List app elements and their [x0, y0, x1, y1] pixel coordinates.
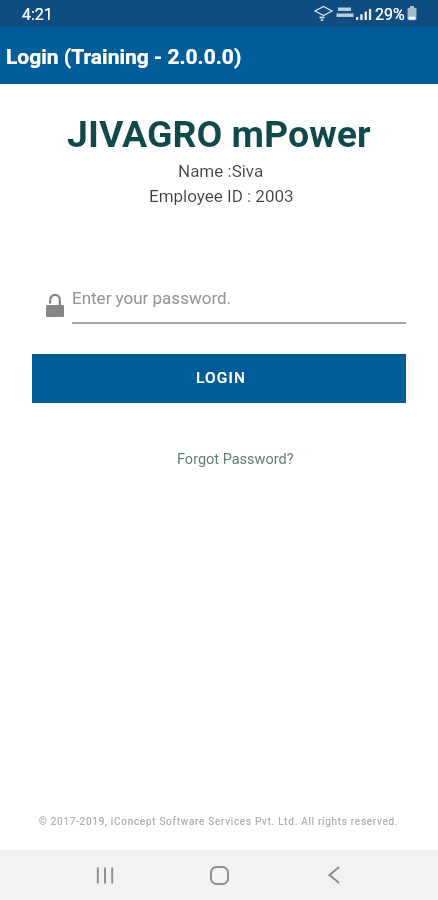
staticText: © 2017-2019, iConcept Software Services …: [39, 816, 399, 828]
staticText: Name :Siva: [178, 161, 264, 181]
button[interactable]: Forgot Password?: [167, 444, 304, 475]
staticText: LOGIN: [196, 369, 247, 387]
button[interactable]: LOGIN: [32, 354, 406, 403]
staticText: 4:21: [22, 5, 53, 24]
button[interactable]: Home: [187, 850, 251, 900]
button[interactable]: Recent apps: [73, 850, 137, 900]
button[interactable]: Enter your password.: [32, 285, 406, 325]
staticText: Forgot Password?: [177, 451, 294, 468]
staticText: JIVAGRO mPower: [67, 112, 371, 156]
staticText: Login (Training - 2.0.0.0): [6, 45, 242, 70]
staticText: Employee ID : 2003: [149, 186, 294, 206]
staticText: 29%: [375, 5, 405, 24]
button[interactable]: Back: [302, 850, 366, 900]
staticText: Enter your password.: [72, 288, 232, 308]
